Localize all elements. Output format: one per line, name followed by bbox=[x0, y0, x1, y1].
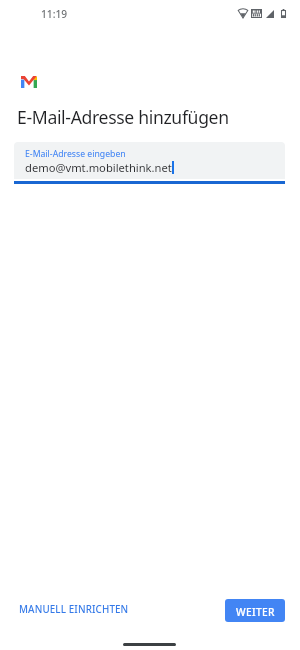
button[interactable]: E-Mail-Adresse eingeben bbox=[14, 142, 285, 184]
staticText: E-Mail-Adresse hinzufügen bbox=[17, 105, 229, 129]
staticText: 11:19 bbox=[41, 7, 68, 21]
staticText: WEITER bbox=[236, 605, 275, 619]
staticText: MANUELL EINRICHTEN bbox=[19, 603, 129, 616]
staticText: E-Mail-Adresse eingeben bbox=[25, 148, 126, 160]
button[interactable]: MANUELL EINRICHTEN bbox=[11, 597, 137, 622]
staticText: demo@vmt.mobilethink.net bbox=[25, 160, 172, 175]
button[interactable]: WEITER bbox=[225, 599, 285, 622]
